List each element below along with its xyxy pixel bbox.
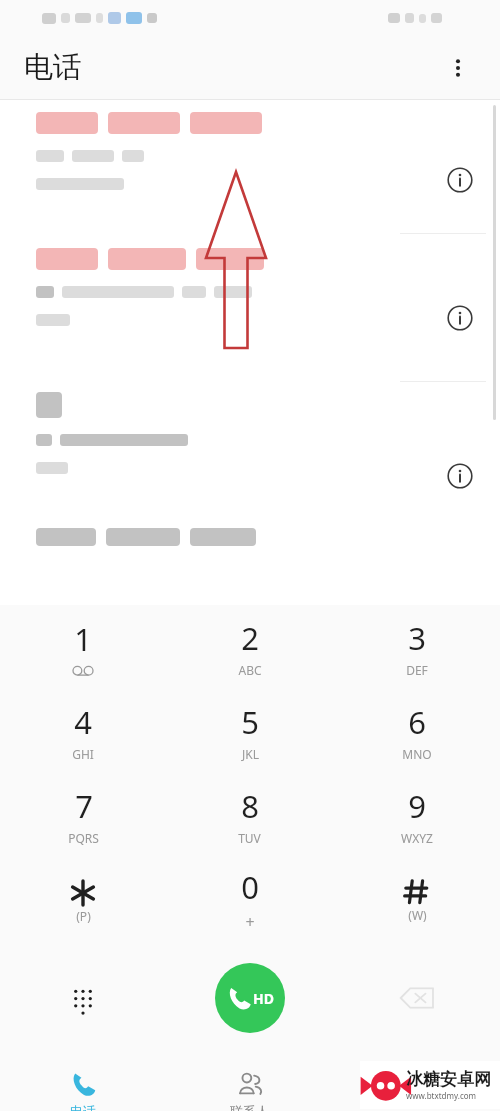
staticText: www.btxtdmy.com [406, 1090, 477, 1101]
button[interactable]: Call details [438, 296, 482, 340]
staticText: 6 [408, 701, 426, 743]
button[interactable]: Hide keypad [0, 941, 166, 1055]
button[interactable]: More options [436, 46, 480, 90]
button[interactable]: 6 [333, 689, 500, 773]
button[interactable]: Call details [0, 234, 500, 382]
staticText: 联系人 [230, 1103, 269, 1111]
button[interactable]: Call [215, 963, 285, 1033]
button[interactable]: (W) [333, 857, 500, 941]
staticText: (P) [76, 908, 91, 924]
button[interactable]: 7 [0, 773, 166, 857]
staticText: 5 [241, 701, 259, 743]
staticText: JKL [242, 746, 259, 762]
button[interactable]: 联系人 [166, 1071, 333, 1111]
staticText: ABC [238, 662, 262, 678]
button[interactable]: (P) [0, 857, 166, 941]
staticText: 0 [241, 866, 259, 908]
staticText: 电话 [24, 49, 82, 86]
button[interactable]: 2 [166, 605, 333, 689]
staticText: HD [253, 989, 274, 1008]
button[interactable]: 1 [0, 605, 166, 689]
staticText: 2 [241, 617, 259, 659]
staticText: 3 [408, 617, 426, 659]
staticText: 1 [74, 618, 92, 660]
button[interactable]: Call details [438, 454, 482, 498]
staticText: TUV [238, 830, 261, 846]
button[interactable]: 3 [333, 605, 500, 689]
staticText: 4 [74, 701, 92, 743]
staticText: (W) [408, 907, 427, 923]
staticText: DEF [406, 662, 428, 678]
staticText: + [245, 911, 255, 933]
button[interactable]: 电话 [0, 1071, 166, 1111]
staticText: GHI [72, 746, 94, 762]
button[interactable]: 8 [166, 773, 333, 857]
button[interactable]: More [333, 1071, 500, 1111]
button[interactable]: Call details [438, 158, 482, 202]
staticText: PQRS [68, 830, 99, 846]
staticText: 8 [241, 785, 259, 827]
button[interactable]: 5 [166, 689, 333, 773]
staticText: 9 [408, 785, 426, 827]
button[interactable]: 4 [0, 689, 166, 773]
button[interactable]: Call details [0, 382, 500, 522]
staticText: 电话 [70, 1103, 96, 1111]
staticText: 7 [75, 785, 93, 827]
staticText: WXYZ [401, 830, 433, 846]
button[interactable]: Call details [0, 100, 500, 234]
button[interactable]: 9 [333, 773, 500, 857]
staticText: 冰糖安卓网 [406, 1069, 491, 1090]
staticText: MNO [402, 746, 432, 762]
button[interactable]: 0 [166, 857, 333, 941]
